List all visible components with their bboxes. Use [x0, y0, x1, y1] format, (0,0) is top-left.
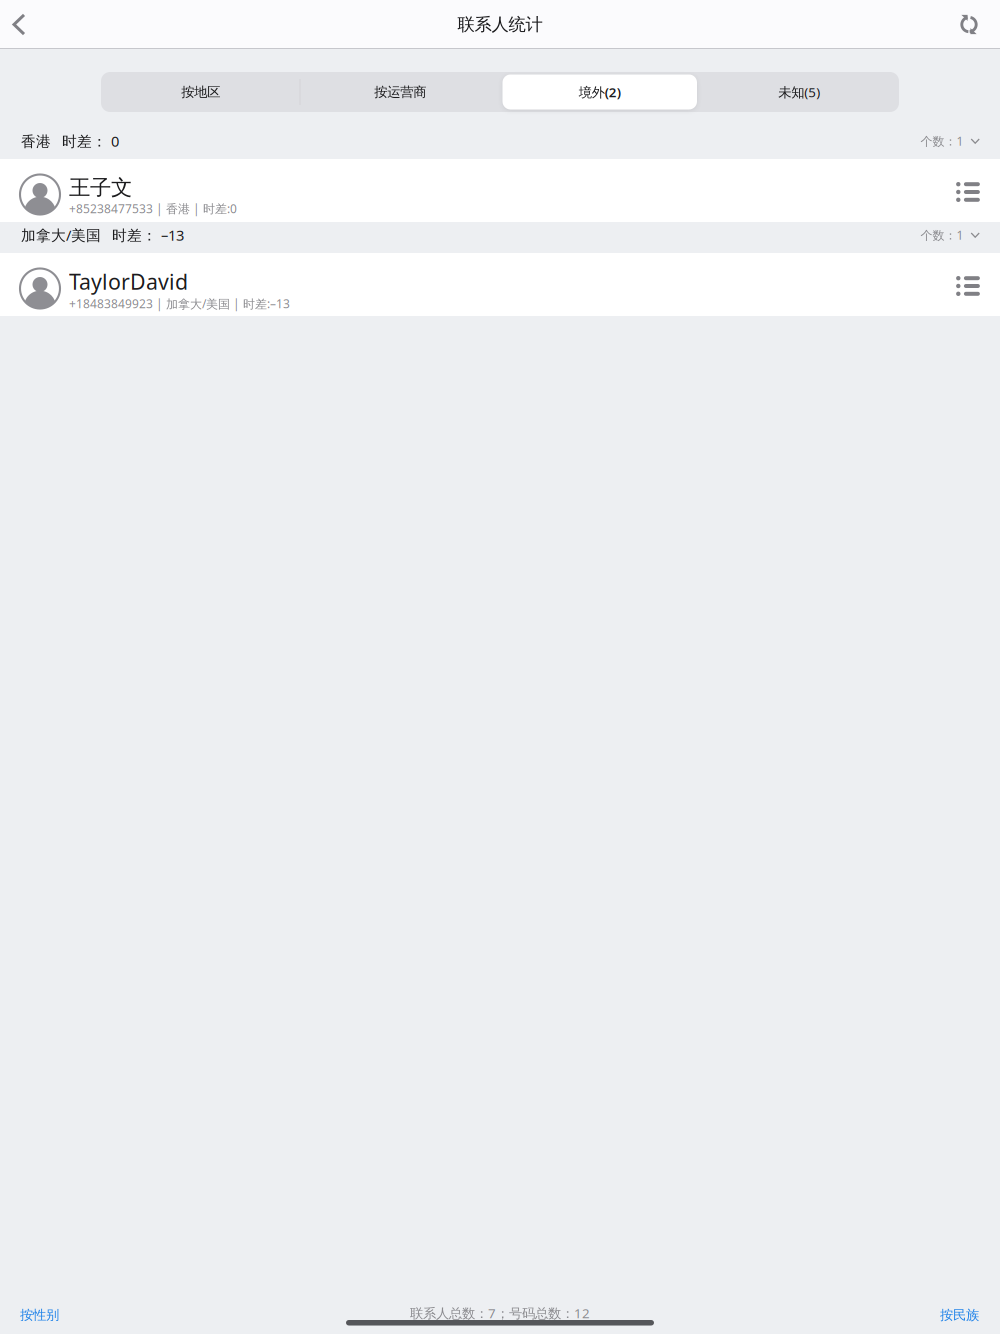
- staticText: 香港 时差： 0: [21, 131, 119, 151]
- staticText: 按民族: [940, 1307, 979, 1323]
- staticText: TaylorDavid: [69, 267, 188, 296]
- staticText: 未知(5): [778, 83, 820, 101]
- staticText: 按运营商: [374, 84, 426, 100]
- staticText: 境外(2): [579, 83, 621, 101]
- button[interactable]: 个数：1: [920, 127, 980, 155]
- button[interactable]: Back: [0, 0, 44, 49]
- button[interactable]: 个数：1: [920, 221, 980, 249]
- button[interactable]: 境外(2): [500, 72, 699, 112]
- button[interactable]: 按性别: [0, 1296, 71, 1334]
- staticText: 联系人统计: [457, 14, 542, 35]
- staticText: +18483849923 | 加拿大/美国 | 时差:–13: [69, 296, 290, 312]
- staticText: 联系人总数：7；号码总数：12: [410, 1304, 590, 1322]
- staticText: 王子文: [69, 174, 132, 201]
- button[interactable]: Refresh: [941, 0, 1000, 49]
- button[interactable]: 王子文: [0, 159, 1000, 222]
- button[interactable]: 按地区: [101, 72, 300, 112]
- staticText: 个数：1: [920, 133, 963, 149]
- staticText: 加拿大/美国 时差： –13: [21, 225, 184, 245]
- staticText: 按地区: [181, 84, 220, 100]
- staticText: 按性别: [20, 1307, 59, 1323]
- button[interactable]: 按民族: [928, 1296, 1000, 1334]
- button[interactable]: 按运营商: [300, 72, 500, 112]
- staticText: +85238477533 | 香港 | 时差:0: [69, 201, 237, 216]
- staticText: 个数：1: [920, 227, 963, 243]
- button[interactable]: 未知(5): [699, 72, 899, 112]
- button[interactable]: TaylorDavid: [0, 253, 1000, 316]
